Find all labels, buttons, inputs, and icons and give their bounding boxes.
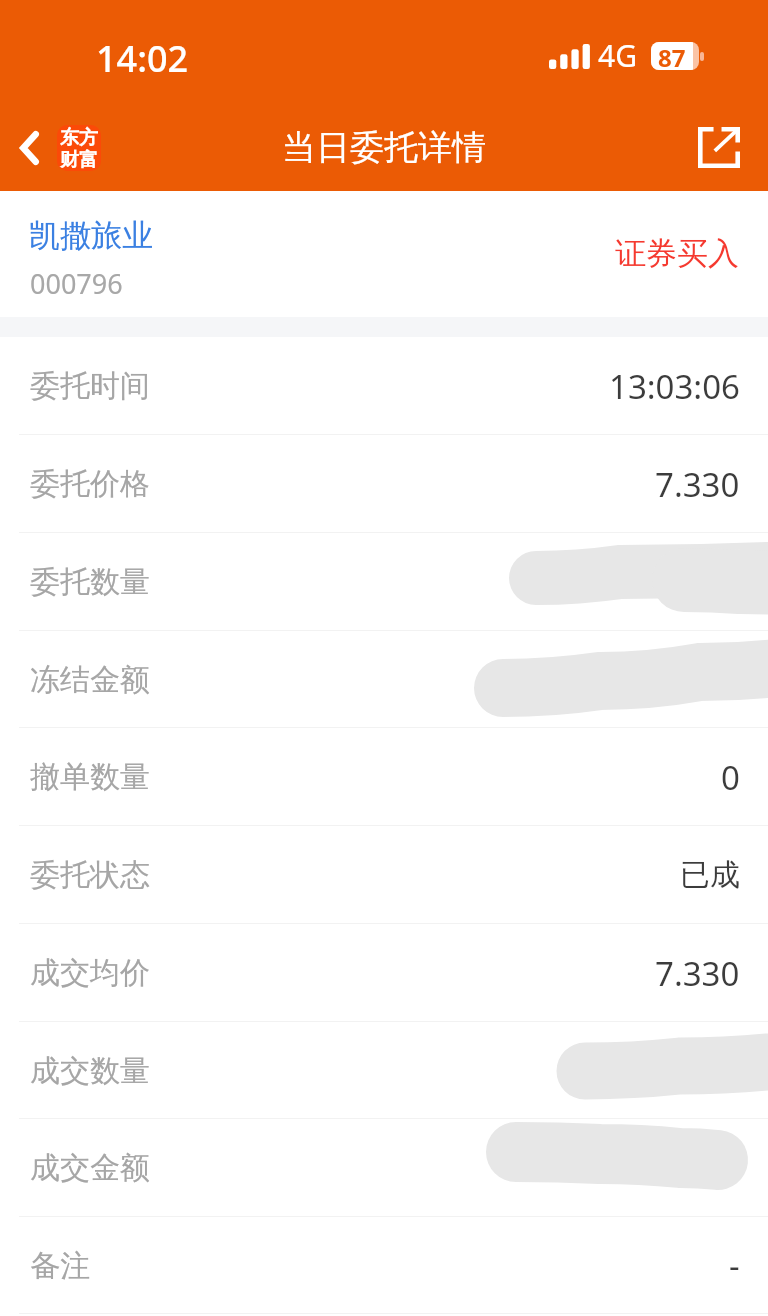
button[interactable]: 成交均价: [0, 924, 768, 1022]
staticText: 13:03:06: [609, 364, 740, 409]
staticText: 14:02: [96, 34, 189, 83]
staticText: 已成: [680, 856, 740, 894]
staticText: 凯撒旅业: [29, 216, 153, 255]
staticText: 4G: [598, 35, 637, 76]
staticText: 7.330: [655, 951, 740, 996]
staticText: 备注: [30, 1247, 90, 1285]
staticText: -: [729, 1243, 740, 1288]
button[interactable]: 撤单数量: [0, 728, 768, 826]
button[interactable]: 备注: [0, 1217, 768, 1314]
staticText: 证券买入: [615, 234, 739, 273]
staticText: 撤单数量: [30, 758, 150, 796]
staticText: 0: [721, 755, 740, 800]
staticText: 成交均价: [30, 954, 150, 992]
staticText: 87: [658, 42, 686, 69]
staticText: 成交金额: [30, 1149, 150, 1187]
staticText: 东方 财富: [60, 126, 98, 171]
staticText: 委托状态: [30, 856, 150, 894]
button[interactable]: Back: [0, 115, 115, 181]
staticText: 委托数量: [30, 563, 150, 601]
button[interactable]: 委托时间: [0, 337, 768, 435]
button[interactable]: Share: [672, 107, 768, 188]
button[interactable]: 委托数量: [0, 533, 768, 631]
staticText: 当日委托详情: [282, 126, 486, 169]
staticText: 成交数量: [30, 1052, 150, 1090]
button[interactable]: 成交金额: [0, 1119, 768, 1217]
staticText: 000796: [30, 265, 123, 302]
button[interactable]: 成交数量: [0, 1022, 768, 1119]
staticText: 冻结金额: [30, 661, 150, 699]
staticText: 委托时间: [30, 367, 150, 405]
staticText: 7.330: [655, 462, 740, 507]
button[interactable]: 委托价格: [0, 435, 768, 533]
button[interactable]: 委托状态: [0, 826, 768, 924]
staticText: 委托价格: [30, 465, 150, 503]
button[interactable]: 冻结金额: [0, 631, 768, 728]
